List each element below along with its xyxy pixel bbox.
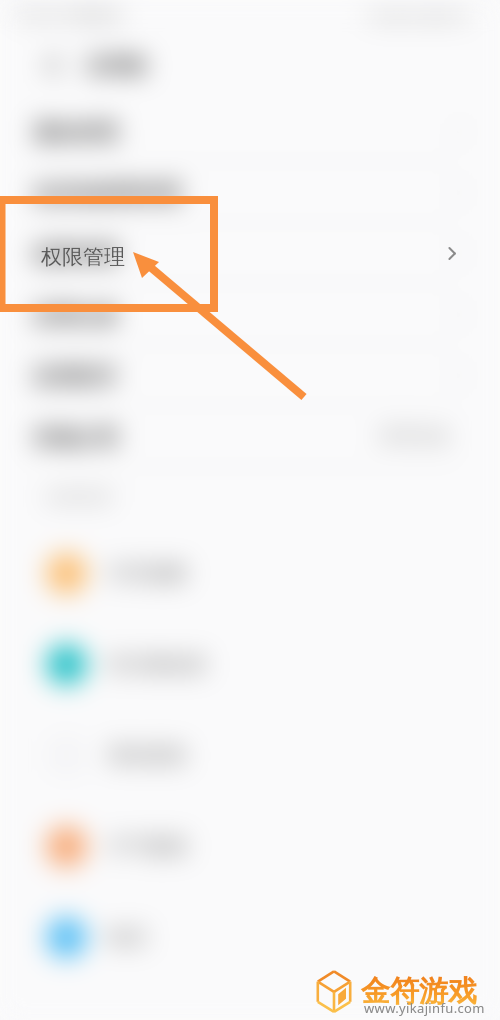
staticText: 天气预报 [107, 834, 187, 859]
staticText: 存储占用 [33, 424, 117, 450]
staticText: 权限管理 [33, 241, 117, 267]
button[interactable]: 权限管理 [0, 223, 500, 284]
other: 金符游戏 logo [314, 968, 354, 1014]
staticText: 权限管理 [34, 242, 118, 268]
staticText: 应用锁 [87, 54, 147, 79]
button[interactable]: 电话 [0, 892, 500, 983]
button[interactable]: 音乐播放器 [0, 619, 500, 710]
staticText: 存储占用 [34, 425, 118, 451]
staticText: www.yikajinfu.com [364, 999, 485, 1017]
staticText: 系统更新 [107, 743, 187, 768]
staticText: 应用锁 [86, 53, 146, 78]
button[interactable]: 自启动权限管理 [0, 162, 500, 223]
staticText: 电话 [107, 925, 147, 950]
staticText: 金符游戏 [361, 973, 477, 1010]
staticText: 自启动权限管理 [33, 180, 180, 206]
button[interactable]: 天气预报 [0, 801, 500, 892]
staticText: 权限管理 [41, 244, 125, 270]
button[interactable]: 系统更新 [0, 710, 500, 801]
staticText: 通知管理 [33, 119, 117, 145]
button[interactable]: 通知管理 [0, 101, 500, 162]
button[interactable]: 存储占用 [0, 406, 500, 467]
staticText: 应用分身 [34, 303, 118, 329]
staticText: 应用双开 [34, 364, 118, 390]
staticText: 应用分身 [33, 302, 117, 328]
button[interactable]: 权限管理 [0, 223, 500, 284]
button[interactable]: 应用双开 [0, 345, 500, 406]
staticText: 音乐播放器 [107, 652, 207, 677]
staticText: 自启动权限管理 [34, 181, 181, 207]
button[interactable]: 应用分身 [0, 284, 500, 345]
staticText: 日历提醒 [107, 561, 187, 586]
button[interactable]: 日历提醒 [0, 528, 500, 619]
staticText: 应用双开 [33, 363, 117, 389]
staticText: 通知管理 [34, 120, 118, 146]
